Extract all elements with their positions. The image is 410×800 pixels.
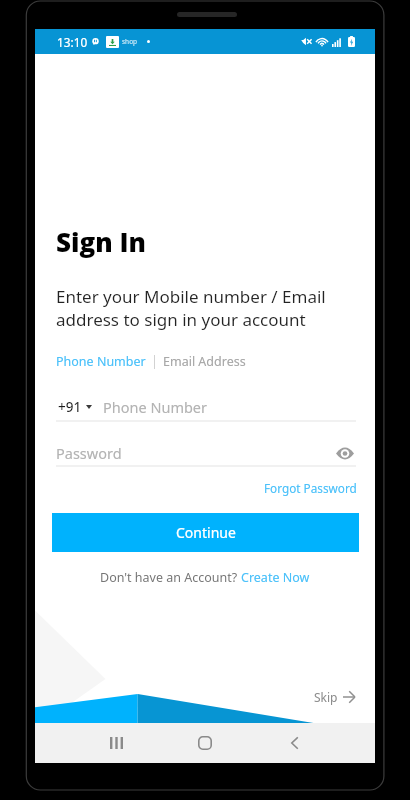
staticText: shop [122, 37, 138, 46]
button[interactable]: Recents [94, 723, 138, 763]
button[interactable]: Skip [314, 689, 355, 705]
button[interactable]: Home [183, 723, 227, 763]
staticText: Sign In [56, 224, 146, 259]
staticText: Phone Number [103, 397, 208, 417]
staticText: Forgot Password [264, 480, 357, 496]
button[interactable]: Create Now [241, 569, 310, 586]
staticText: Skip [314, 689, 338, 705]
button[interactable]: Email Address [163, 353, 246, 370]
staticText: Create Now [241, 569, 310, 586]
staticText: Enter your Mobile number / Email address… [56, 285, 326, 331]
button[interactable]: Back [272, 723, 316, 763]
staticText: +91 [58, 398, 82, 416]
button[interactable]: Show password [335, 445, 355, 461]
staticText: Email Address [163, 353, 246, 370]
button[interactable]: Phone Number [56, 353, 146, 370]
staticText: 13:10 [57, 34, 88, 50]
staticText: Continue [176, 523, 236, 542]
staticText: Password [56, 443, 122, 463]
staticText: Phone Number [56, 353, 146, 370]
staticText: Don't have an Account? [100, 569, 241, 586]
button[interactable]: Forgot Password [264, 480, 357, 496]
button[interactable]: Continue [52, 513, 359, 552]
